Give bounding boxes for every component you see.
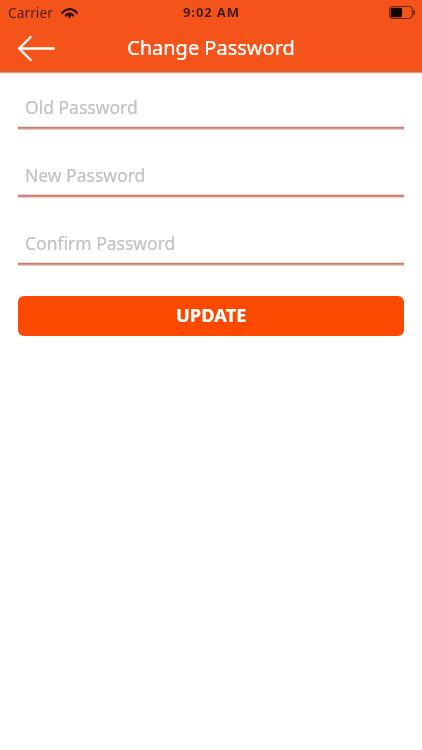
staticText: Carrier xyxy=(8,3,53,22)
button[interactable]: Old Password xyxy=(18,95,404,129)
button[interactable]: UPDATE xyxy=(18,296,404,336)
staticText: Change Password xyxy=(127,34,295,61)
button[interactable]: New Password xyxy=(18,163,404,197)
button[interactable]: Back xyxy=(0,24,64,72)
button[interactable]: Confirm Password xyxy=(18,231,404,265)
staticText: New Password xyxy=(25,163,146,187)
staticText: 9:02 AM xyxy=(183,3,240,21)
staticText: Old Password xyxy=(25,95,138,119)
staticText: Confirm Password xyxy=(25,231,176,255)
staticText: UPDATE xyxy=(176,303,247,328)
